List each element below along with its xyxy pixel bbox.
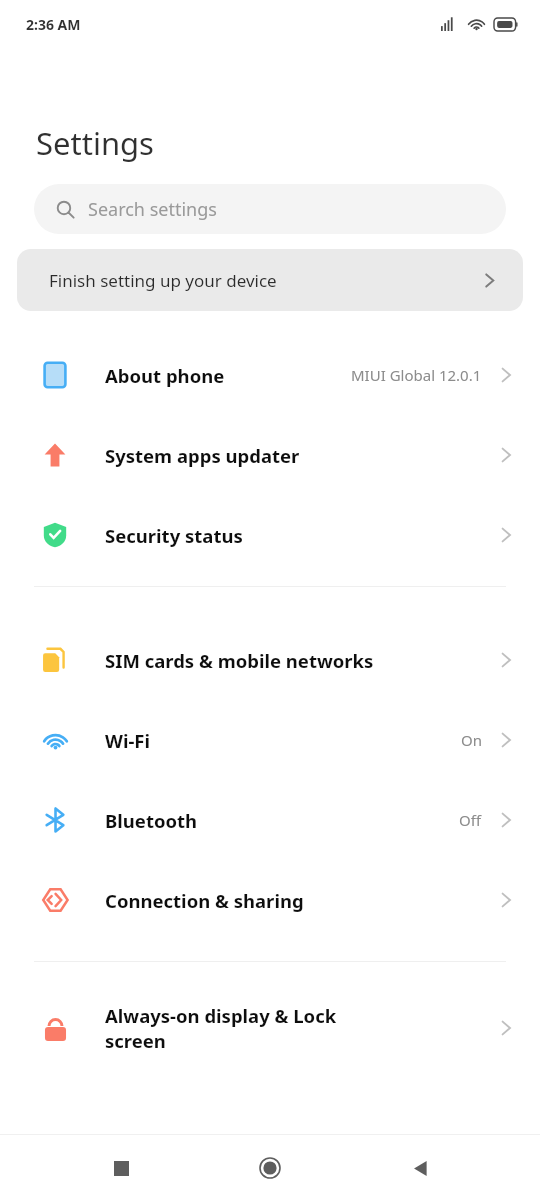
button[interactable]: Bluetooth	[0, 780, 540, 860]
button[interactable]: SIM cards & mobile networks	[0, 620, 540, 700]
staticText: MIUI Global 12.0.1	[351, 365, 482, 385]
staticText: System apps updater	[105, 443, 496, 468]
staticText: About phone	[105, 363, 351, 388]
staticText: Off	[459, 810, 482, 830]
button[interactable]: Wi-Fi	[0, 700, 540, 780]
button[interactable]: Back	[391, 1139, 449, 1197]
button[interactable]: Always-on display & Lock screen	[0, 988, 540, 1068]
staticText: Settings	[36, 122, 154, 164]
staticText: Security status	[105, 523, 496, 548]
button[interactable]: About phone	[0, 335, 540, 415]
button[interactable]: Security status	[0, 495, 540, 575]
button[interactable]: Finish setting up your device	[17, 249, 523, 311]
staticText: Finish setting up your device	[49, 269, 480, 292]
staticText: SIM cards & mobile networks	[105, 648, 496, 673]
staticText: Wi-Fi	[105, 728, 461, 753]
staticText: On	[461, 730, 482, 750]
staticText: 2:36 AM	[26, 15, 81, 34]
staticText: Connection & sharing	[105, 888, 496, 913]
button[interactable]: Home	[241, 1139, 299, 1197]
staticText: Always-on display & Lock screen	[105, 1003, 496, 1053]
button[interactable]: Search settings	[34, 184, 506, 234]
button[interactable]: System apps updater	[0, 415, 540, 495]
staticText: Search settings	[88, 197, 217, 222]
staticText: Bluetooth	[105, 808, 459, 833]
button[interactable]: Recents	[92, 1139, 150, 1197]
button[interactable]: Connection & sharing	[0, 860, 540, 940]
